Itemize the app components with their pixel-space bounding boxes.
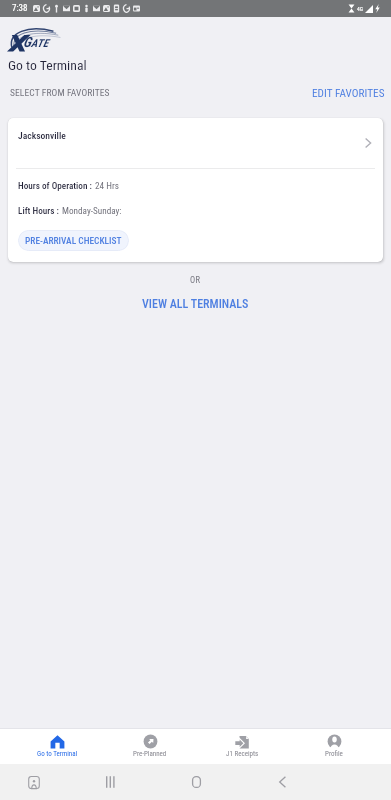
staticText: PRE-ARRIVAL CHECKLIST xyxy=(25,235,122,246)
staticText: ATE xyxy=(31,37,49,50)
staticText: 7:38 xyxy=(12,3,28,14)
button[interactable]: Go to Terminal xyxy=(11,728,104,764)
staticText: Pre-Planned xyxy=(133,750,167,758)
button[interactable]: J1 Receipts xyxy=(196,728,288,764)
staticText: Lift Hours : xyxy=(18,205,62,216)
staticText: Profile xyxy=(325,750,343,758)
button[interactable]: EDIT FAVORITES xyxy=(308,84,389,103)
staticText: Hours of Operation : xyxy=(18,180,95,191)
staticText: Go to Terminal xyxy=(37,750,78,758)
button[interactable]: PRE-ARRIVAL CHECKLIST xyxy=(18,230,129,251)
staticText: 24 Hrs xyxy=(95,180,119,191)
button[interactable]: Recents xyxy=(21,769,47,795)
staticText: Jacksonville xyxy=(18,130,66,141)
staticText: Monday-Sunday: xyxy=(62,205,122,216)
button[interactable]: Profile xyxy=(288,728,380,764)
staticText: G xyxy=(23,34,31,50)
staticText: VIEW ALL TERMINALS xyxy=(142,297,249,311)
staticText: Go to Terminal xyxy=(8,57,87,73)
staticText: J1 Receipts xyxy=(226,750,259,758)
button[interactable]: Home xyxy=(183,769,209,795)
button[interactable]: Back xyxy=(269,769,295,795)
button[interactable]: Menu xyxy=(97,769,123,795)
button[interactable]: Pre-Planned xyxy=(104,728,196,764)
staticText: SELECT FROM FAVORITES xyxy=(10,87,110,98)
staticText: EDIT FAVORITES xyxy=(312,87,385,100)
button[interactable]: Jacksonville xyxy=(8,118,383,168)
staticText: OR xyxy=(190,275,201,285)
button[interactable]: VIEW ALL TERMINALS xyxy=(134,294,257,314)
staticText: 4G xyxy=(357,6,363,12)
